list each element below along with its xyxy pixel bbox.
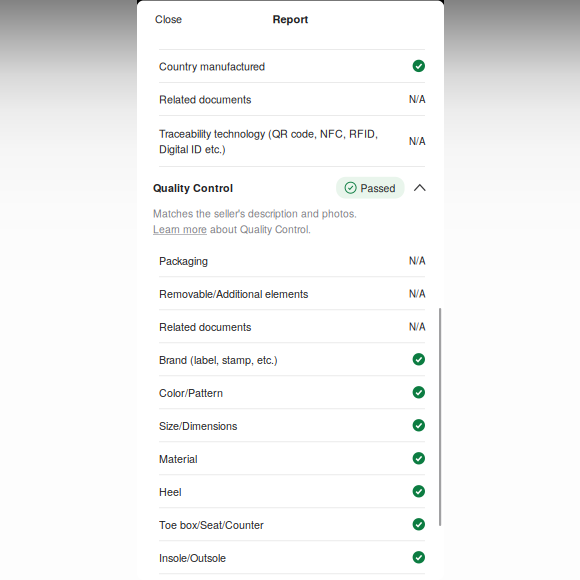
staticText: N/A — [409, 286, 425, 300]
button[interactable]: Material — [159, 442, 425, 475]
button[interactable]: Learn more — [153, 221, 207, 236]
button[interactable]: Brand (label, stamp, etc.) — [159, 343, 425, 376]
staticText: Traceability technology (QR code, NFC, R… — [159, 126, 378, 156]
staticText: Learn more — [153, 221, 207, 236]
button[interactable]: Color/Pattern — [159, 376, 425, 409]
button[interactable]: Related documents — [159, 83, 425, 116]
button[interactable]: Related documents — [159, 310, 425, 343]
staticText: Removable/Additional elements — [159, 286, 308, 301]
staticText: Color/Pattern — [159, 385, 223, 400]
button[interactable]: Toe box/Seat/Counter — [159, 508, 425, 541]
staticText: Related documents — [159, 91, 251, 107]
staticText: Material — [159, 451, 197, 466]
staticText: about Quality Control. — [207, 221, 311, 236]
button[interactable]: Removable/Additional elements — [159, 277, 425, 310]
staticText: Quality Control — [153, 180, 233, 195]
button[interactable]: Traceability technology (QR code, NFC, R… — [159, 116, 425, 167]
staticText: N/A — [409, 92, 425, 106]
staticText: Size/Dimensions — [159, 418, 237, 433]
button[interactable]: Packaging — [159, 244, 425, 277]
button[interactable]: Collapse section — [405, 183, 428, 192]
staticText: Report — [272, 11, 308, 27]
staticText: N/A — [409, 253, 425, 267]
staticText: Insole/Outsole — [159, 550, 226, 565]
button[interactable]: Close — [150, 6, 187, 31]
staticText: Country manufactured — [159, 58, 265, 74]
button[interactable]: Heel — [159, 475, 425, 508]
button[interactable]: Country manufactured — [159, 50, 425, 83]
staticText: Close — [155, 11, 182, 26]
staticText: Passed — [361, 180, 396, 195]
staticText: Related documents — [159, 319, 251, 334]
staticText: N/A — [409, 319, 425, 333]
button[interactable]: Size/Dimensions — [159, 409, 425, 442]
staticText: Heel — [159, 484, 181, 499]
staticText: N/A — [409, 134, 425, 148]
staticText: Brand (label, stamp, etc.) — [159, 352, 278, 367]
staticText: Toe box/Seat/Counter — [159, 517, 264, 532]
button[interactable]: Insole/Outsole — [159, 541, 425, 574]
staticText: Packaging — [159, 253, 208, 268]
staticText: Matches the seller's description and pho… — [153, 206, 357, 220]
